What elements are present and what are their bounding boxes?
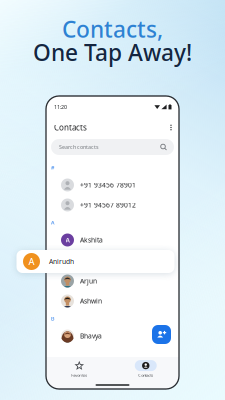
staticText: # [51,164,54,171]
staticText: Favorites [71,373,87,378]
staticText: A [51,219,54,226]
button[interactable]: +91 94567 89012 [46,195,179,215]
button[interactable]: More options [165,121,173,133]
button[interactable]: Arjun [46,271,179,291]
staticText: Bhavya [80,332,102,340]
button[interactable]: Contacts [112,360,179,378]
button[interactable]: Bhavya [46,326,179,346]
staticText: +91 93456 78901 [80,181,136,189]
staticText: 11:20 [54,103,67,111]
staticText: B [51,315,54,322]
button[interactable]: A [16,250,174,273]
button[interactable]: A [46,230,179,250]
staticText: Arjun [80,277,97,285]
button[interactable]: Add contact [152,325,171,344]
staticText: A [65,236,69,244]
staticText: Contacts [54,122,87,133]
button[interactable]: Search contacts [51,139,174,155]
staticText: A [28,255,34,268]
staticText: Anirudh [49,257,74,266]
staticText: Contacts, [62,14,163,44]
button[interactable]: +91 93456 78901 [46,175,179,195]
staticText: Contacts [138,373,153,378]
staticText: +91 94567 89012 [80,201,136,209]
staticText: Akshita [80,236,103,244]
button[interactable]: Favorites [46,360,112,378]
staticText: Ashwin [80,297,102,305]
button[interactable]: Ashwin [46,291,179,311]
staticText: Search contacts [59,143,99,151]
staticText: One Tap Away! [33,37,192,67]
